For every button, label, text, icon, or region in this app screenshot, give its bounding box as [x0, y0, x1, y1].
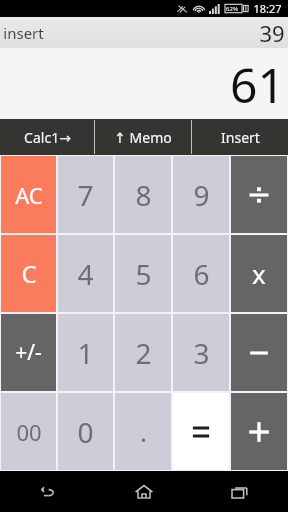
button[interactable]: . — [115, 393, 171, 470]
button[interactable]: Recent apps — [192, 471, 288, 512]
staticText: x — [252, 256, 266, 291]
button[interactable]: 4 — [58, 235, 113, 312]
button[interactable]: Calc1→ — [0, 119, 94, 155]
button[interactable]: 6 — [173, 235, 229, 312]
staticText: 9 — [193, 176, 210, 214]
button[interactable]: 1 — [58, 314, 113, 391]
staticText: 5 — [135, 255, 152, 293]
button[interactable]: C — [1, 235, 56, 312]
button[interactable]: Insert — [192, 119, 288, 155]
staticText: 62% — [226, 5, 238, 13]
button[interactable]: 3 — [173, 314, 229, 391]
button[interactable]: Home — [96, 471, 192, 512]
staticText: 6 — [193, 255, 210, 293]
button[interactable]: +/- — [1, 314, 56, 391]
button[interactable]: 8 — [115, 156, 171, 233]
button[interactable]: 7 — [58, 156, 113, 233]
staticText: 61 — [230, 52, 285, 117]
staticText: 0 — [77, 413, 94, 451]
button[interactable] — [231, 393, 287, 470]
staticText: ↑ Memo — [114, 128, 172, 147]
staticText: 3 — [193, 334, 210, 372]
button[interactable]: AC — [1, 156, 56, 233]
staticText: insert — [3, 23, 44, 43]
button[interactable]: 0 — [58, 393, 113, 470]
staticText: 00 — [16, 417, 42, 447]
button[interactable] — [231, 156, 287, 233]
staticText: 18:27 — [253, 1, 282, 16]
staticText: 4 — [77, 255, 94, 293]
staticText: 7 — [77, 176, 94, 214]
staticText: +/- — [15, 338, 42, 367]
staticText: 2 — [135, 334, 152, 372]
staticText: 8 — [135, 176, 152, 214]
staticText: . — [140, 414, 147, 449]
button[interactable] — [231, 314, 287, 391]
button[interactable]: 2 — [115, 314, 171, 391]
staticText: 39 — [259, 18, 285, 48]
staticText: Calc1→ — [24, 128, 71, 147]
staticText: 1 — [77, 334, 94, 372]
button[interactable]: 9 — [173, 156, 229, 233]
button[interactable]: 5 — [115, 235, 171, 312]
button[interactable]: Back — [0, 471, 96, 512]
button[interactable]: ↑ Memo — [95, 119, 191, 155]
button[interactable]: x — [231, 235, 287, 312]
staticText: AC — [15, 180, 43, 210]
button[interactable]: 00 — [1, 393, 56, 470]
staticText: C — [21, 257, 37, 290]
staticText: Insert — [221, 128, 260, 147]
button[interactable] — [173, 393, 229, 470]
